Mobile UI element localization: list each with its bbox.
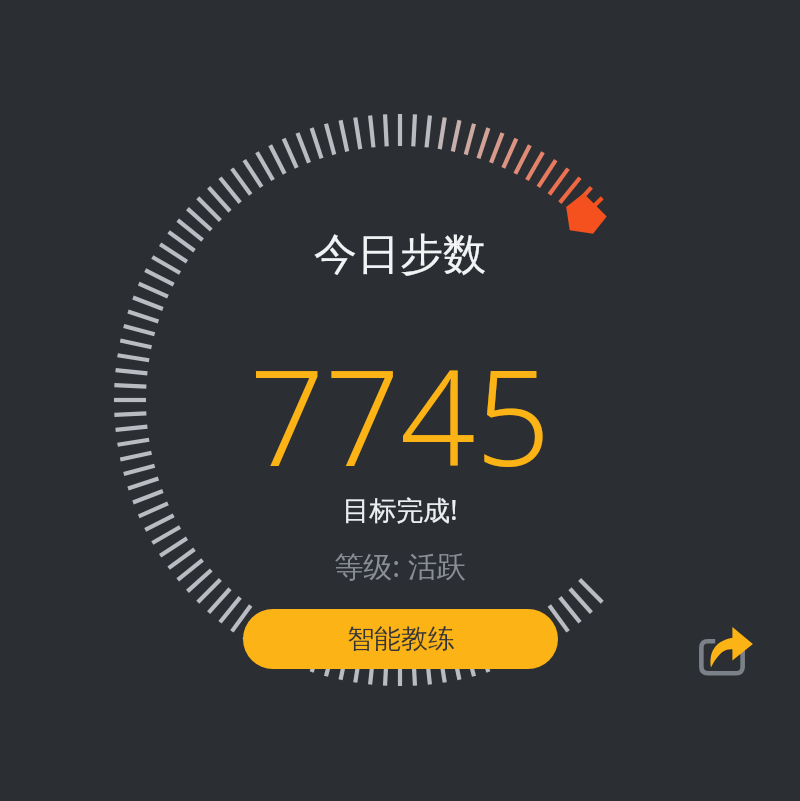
staticText: 目标完成! <box>200 491 600 531</box>
button[interactable]: 智能教练 <box>243 609 558 669</box>
button[interactable]: Share <box>694 622 758 686</box>
staticText: 7745 <box>150 325 650 475</box>
staticText: 今日步数 <box>200 228 600 288</box>
staticText: 智能教练 <box>347 622 455 656</box>
staticText: 等级: 活跃 <box>200 546 600 590</box>
